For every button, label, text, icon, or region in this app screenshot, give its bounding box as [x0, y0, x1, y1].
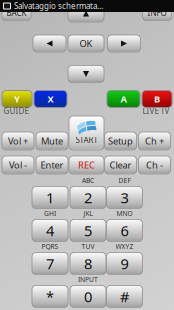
button[interactable]: Enter	[36, 156, 68, 174]
button[interactable]: 4	[32, 219, 68, 241]
button[interactable]: Ch -	[138, 156, 170, 174]
staticText: 2	[84, 188, 92, 207]
staticText: Setup	[108, 135, 133, 147]
button[interactable]: 1	[32, 186, 68, 208]
button[interactable]: Mute	[36, 132, 68, 150]
button[interactable]	[107, 35, 140, 52]
staticText: JKL	[83, 209, 92, 218]
staticText: DEF	[118, 176, 130, 185]
staticText: OK	[79, 37, 92, 50]
staticText: Enter	[40, 159, 63, 171]
button[interactable]: REC	[69, 156, 104, 174]
staticText: #	[120, 287, 129, 306]
staticText: Ch +	[145, 135, 164, 147]
staticText: X	[47, 93, 53, 105]
staticText: TUV	[81, 242, 94, 251]
button[interactable]: Ch +	[138, 132, 170, 150]
staticText: INPUT	[78, 275, 98, 284]
button[interactable]: START	[69, 116, 104, 150]
staticText: 9	[120, 254, 128, 273]
staticText: WXYZ	[115, 242, 133, 251]
button[interactable]: Clear	[104, 156, 136, 174]
button[interactable]: 6	[106, 219, 142, 241]
staticText: B	[154, 93, 160, 105]
staticText: 1	[46, 188, 54, 207]
button[interactable]	[33, 35, 66, 52]
button[interactable]: BACK	[2, 5, 31, 20]
staticText: ABC	[82, 176, 94, 185]
staticText: Y	[14, 93, 20, 105]
button[interactable]: OK	[68, 35, 104, 52]
staticText: Vol +	[8, 135, 28, 147]
staticText: Mute	[41, 135, 63, 147]
staticText: REC	[78, 159, 95, 171]
staticText: 0	[84, 287, 92, 306]
button[interactable]	[68, 5, 104, 22]
staticText: 4	[46, 221, 54, 240]
button[interactable]: X	[34, 90, 67, 107]
button[interactable]: A	[107, 90, 140, 107]
button[interactable]: Y	[2, 90, 32, 107]
staticText: LIVE TV	[142, 106, 169, 116]
button[interactable]: #	[106, 285, 142, 307]
button[interactable]: 3	[106, 186, 142, 208]
staticText: 5	[84, 221, 92, 240]
staticText: 3	[120, 188, 128, 207]
staticText: 7	[46, 254, 54, 273]
button[interactable]	[68, 65, 104, 82]
button[interactable]: 8	[70, 252, 106, 274]
staticText: Ch -	[146, 159, 163, 171]
staticText: A	[120, 93, 126, 105]
button[interactable]: B	[142, 90, 172, 107]
staticText: PQRS	[41, 242, 58, 251]
button[interactable]: Setup	[104, 132, 136, 150]
button[interactable]: 2	[70, 186, 106, 208]
button[interactable]: 0	[70, 285, 106, 307]
button[interactable]: Vol +	[2, 132, 34, 150]
button[interactable]: INFO	[142, 5, 171, 20]
staticText: Clear	[109, 159, 131, 171]
staticText: MNO	[116, 209, 132, 218]
staticText: START	[75, 135, 97, 145]
staticText: *	[46, 287, 54, 306]
button[interactable]: 5	[70, 219, 106, 241]
staticText: BACK	[6, 8, 26, 18]
staticText: GUIDE	[3, 106, 28, 116]
staticText: Vol -	[9, 159, 27, 171]
staticText: INFO	[147, 8, 166, 18]
staticText: 6	[120, 221, 128, 240]
staticText: Salvataggio schermata…	[14, 1, 103, 11]
staticText: GHI	[44, 209, 56, 218]
button[interactable]: Vol -	[2, 156, 34, 174]
button[interactable]: 9	[106, 252, 142, 274]
button[interactable]: *	[32, 285, 68, 307]
button[interactable]: 7	[32, 252, 68, 274]
staticText: 8	[84, 254, 92, 273]
